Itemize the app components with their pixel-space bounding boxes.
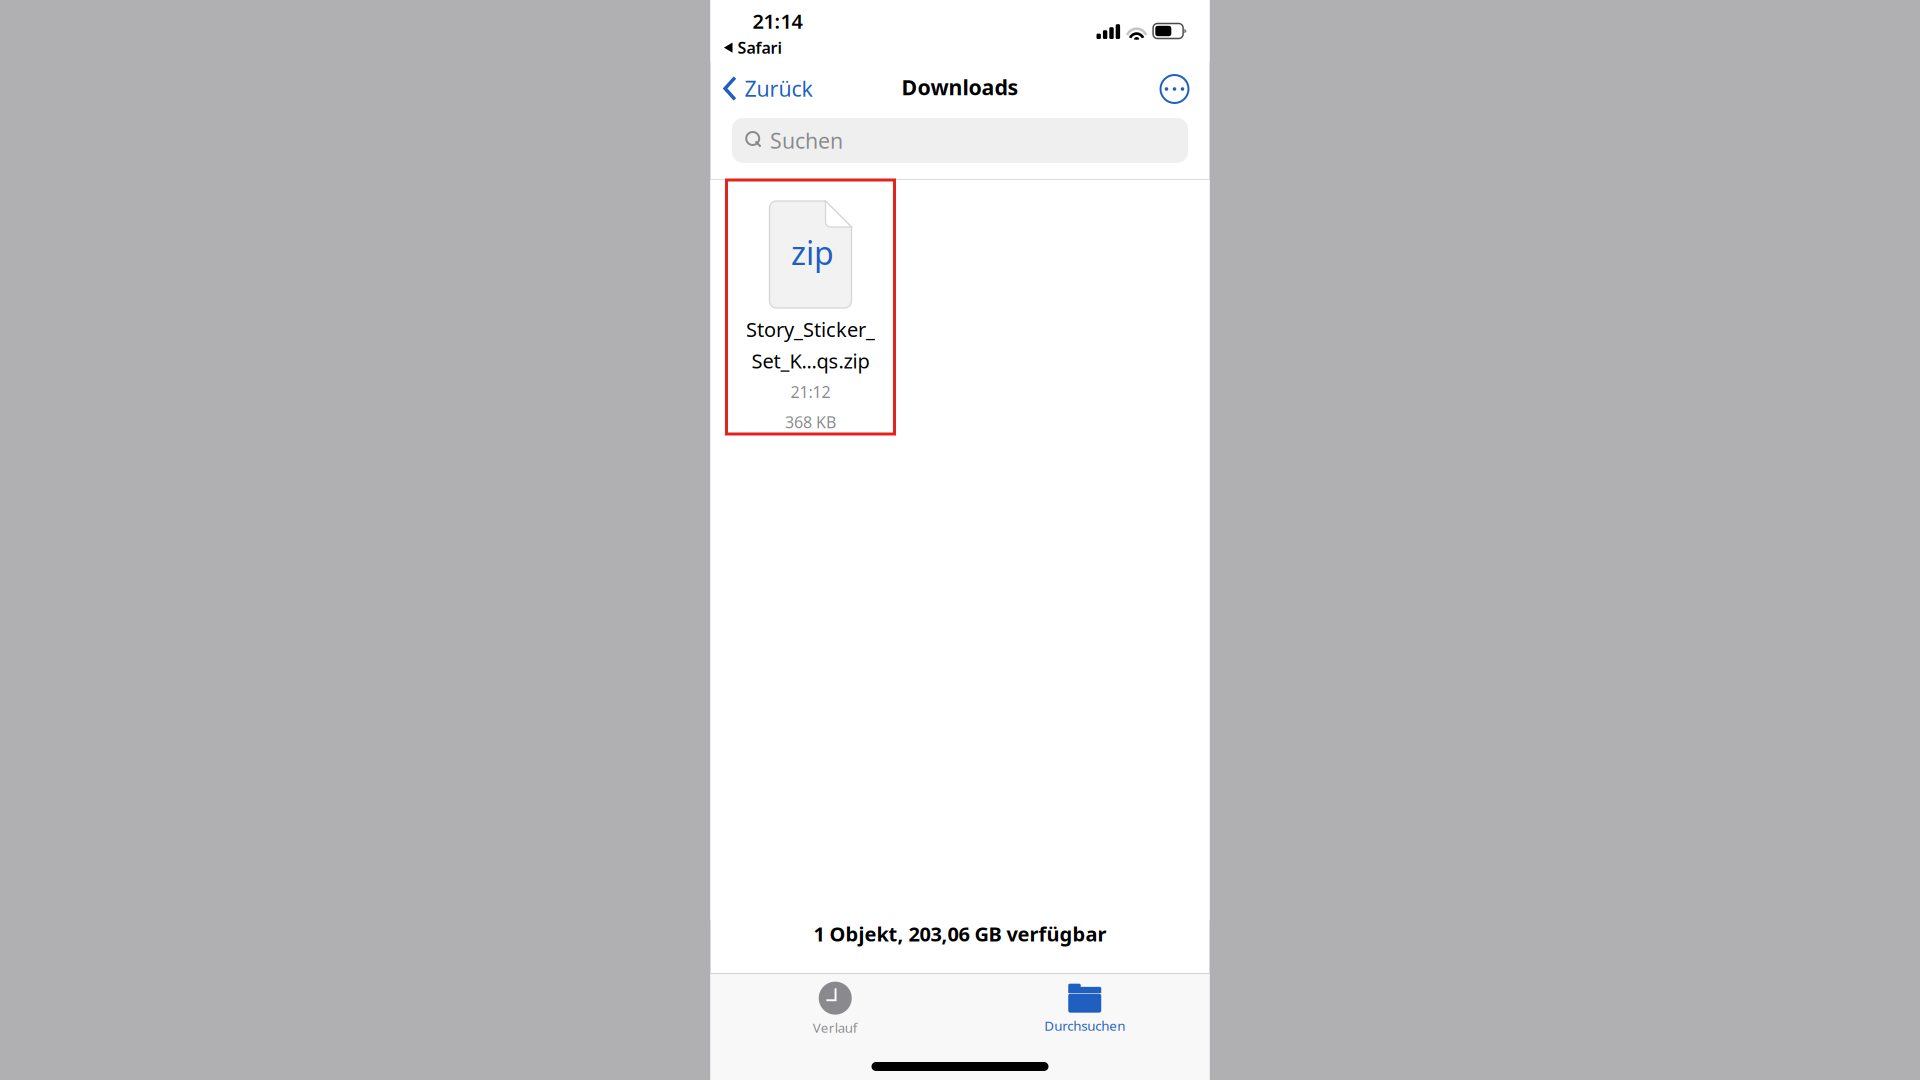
- staticText: Durchsuchen: [1044, 1017, 1125, 1034]
- button[interactable]: zip: [726, 180, 894, 434]
- button[interactable]: Safari: [723, 35, 782, 60]
- staticText: 1 Objekt, 203,06 GB verfügbar: [813, 920, 1106, 947]
- button[interactable]: Suchen: [732, 118, 1188, 163]
- staticText: Zurück: [744, 74, 812, 103]
- staticText: Downloads: [901, 73, 1018, 101]
- staticText: Story_Sticker_: [746, 316, 875, 343]
- button[interactable]: More: [1159, 62, 1209, 112]
- staticText: 21:14: [752, 8, 802, 34]
- staticText: Verlauf: [813, 1019, 858, 1036]
- staticText: Suchen: [770, 126, 843, 155]
- staticText: Safari: [737, 37, 782, 58]
- staticText: Set_K...qs.zip: [751, 348, 869, 374]
- button[interactable]: Zurück: [710, 63, 812, 111]
- staticText: 21:12: [790, 381, 830, 402]
- button[interactable]: Durchsuchen: [960, 981, 1209, 1037]
- staticText: 368 KB: [785, 411, 836, 433]
- staticText: zip: [791, 231, 834, 274]
- button[interactable]: Verlauf: [710, 981, 960, 1037]
